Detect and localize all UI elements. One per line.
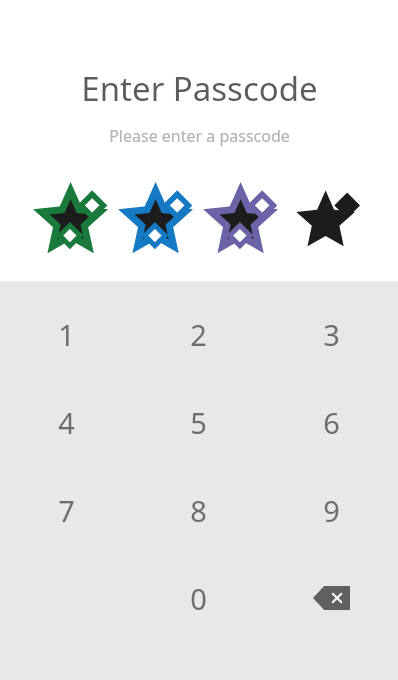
staticText: 9 <box>323 491 340 530</box>
staticText: Enter Passcode <box>81 66 318 111</box>
staticText: 7 <box>58 491 75 530</box>
button[interactable]: 2 <box>132 290 265 378</box>
button[interactable]: 1 <box>0 290 132 378</box>
staticText: 8 <box>190 491 207 530</box>
button[interactable]: 5 <box>132 378 265 466</box>
staticText: 3 <box>323 315 340 354</box>
button[interactable]: 4 <box>0 378 132 466</box>
button[interactable]: 8 <box>132 466 265 554</box>
button[interactable]: 7 <box>0 466 132 554</box>
staticText: Please enter a passcode <box>109 125 290 147</box>
staticText: 2 <box>190 315 207 354</box>
staticText: 6 <box>323 403 340 442</box>
button[interactable]: Backspace <box>265 554 398 642</box>
button[interactable]: 3 <box>265 290 398 378</box>
button[interactable]: 6 <box>265 378 398 466</box>
button[interactable]: 9 <box>265 466 398 554</box>
button[interactable]: 0 <box>132 554 265 642</box>
staticText: 0 <box>190 579 207 618</box>
staticText: 5 <box>190 403 207 442</box>
staticText: 4 <box>58 403 75 442</box>
staticText: 1 <box>58 315 75 354</box>
